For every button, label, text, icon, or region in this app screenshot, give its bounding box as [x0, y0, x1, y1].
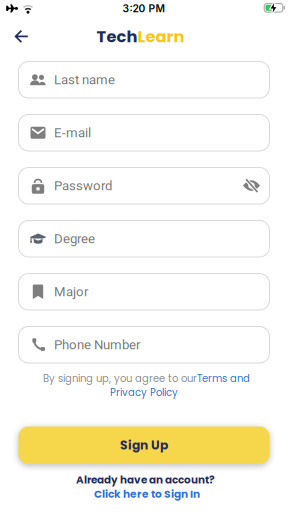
staticText: Sign Up — [120, 437, 168, 454]
staticText: Click here to Sign In — [94, 486, 200, 501]
button[interactable]: Sign Up — [18, 426, 269, 464]
staticText: E-mail — [54, 125, 91, 140]
staticText: Major — [54, 284, 88, 299]
staticText: Privacy Policy — [110, 385, 178, 399]
button[interactable]: Degree — [18, 220, 269, 257]
staticText: By signing up, you agree to our — [43, 371, 197, 385]
staticText: Tech — [96, 25, 137, 48]
staticText: Already have an account? — [76, 472, 215, 487]
button[interactable]: E-mail — [18, 114, 269, 151]
button[interactable]: Back — [7, 22, 36, 51]
button[interactable]: Major — [18, 273, 269, 310]
button[interactable]: Last name — [18, 61, 269, 98]
button[interactable]: Click here to Sign In — [3, 486, 288, 501]
staticText: Terms and — [197, 371, 250, 385]
staticText: Learn — [137, 25, 184, 48]
button[interactable]: Password — [18, 167, 269, 204]
staticText: Degree — [54, 231, 95, 246]
button[interactable]: Terms and — [197, 371, 250, 385]
button[interactable]: Phone Number — [18, 326, 269, 363]
button[interactable]: Privacy Policy — [110, 385, 178, 399]
staticText: 3:20 PM — [122, 2, 165, 15]
staticText: Password — [54, 178, 112, 193]
button[interactable]: Show password — [240, 177, 262, 194]
staticText: Last name — [54, 72, 115, 87]
staticText: Phone Number — [54, 337, 140, 352]
